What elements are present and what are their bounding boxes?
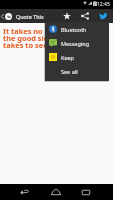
staticText: Bluetooth	[61, 26, 87, 33]
button[interactable]: Bluetooth	[45, 22, 109, 36]
button[interactable]: Tweet	[94, 9, 113, 23]
button[interactable]: Share	[76, 9, 94, 23]
button[interactable]: Navigate up	[0, 9, 5, 23]
button[interactable]: Keep	[45, 50, 109, 64]
button[interactable]: Favorite	[58, 9, 76, 23]
button[interactable]: Recent apps	[75, 184, 97, 200]
button[interactable]: Messaging	[45, 36, 109, 50]
staticText: Keep	[61, 54, 74, 61]
button[interactable]: Back	[13, 184, 35, 200]
staticText: See all	[61, 68, 78, 75]
button[interactable]: See all	[45, 64, 109, 78]
staticText: 12:45	[97, 1, 110, 8]
button[interactable]: Home	[45, 184, 67, 200]
staticText: It takes no more time to see the good si…	[3, 26, 108, 50]
staticText: Quote This	[16, 13, 44, 20]
staticText: Messaging	[61, 40, 90, 47]
